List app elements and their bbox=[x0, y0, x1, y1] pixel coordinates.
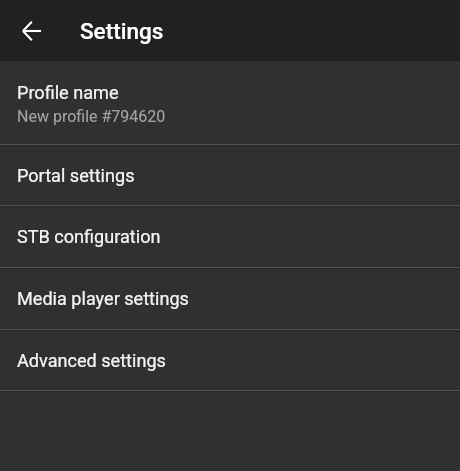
button[interactable]: Profile name bbox=[0, 61, 460, 144]
button[interactable]: STB configuration bbox=[0, 205, 460, 267]
button[interactable]: Navigate up bbox=[0, 0, 56, 61]
staticText: New profile #794620 bbox=[17, 107, 166, 126]
staticText: Portal settings bbox=[17, 165, 135, 186]
button[interactable]: Media player settings bbox=[0, 267, 460, 329]
staticText: Advanced settings bbox=[17, 350, 166, 371]
staticText: Profile name bbox=[17, 82, 119, 103]
staticText: Settings bbox=[80, 18, 164, 44]
staticText: Media player settings bbox=[17, 288, 189, 309]
button[interactable]: Advanced settings bbox=[0, 329, 460, 391]
staticText: STB configuration bbox=[17, 226, 161, 247]
button[interactable]: Portal settings bbox=[0, 144, 460, 205]
